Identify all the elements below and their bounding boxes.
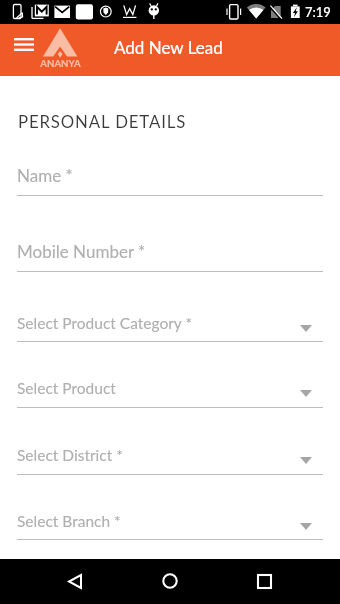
staticText: PERSONAL DETAILS [18, 111, 187, 131]
button[interactable]: Mobile Number * [0, 197, 340, 273]
button[interactable]: Select Product [0, 342, 340, 408]
button[interactable]: Select District * [0, 409, 340, 475]
button[interactable]: Open navigation drawer [4, 27, 44, 61]
staticText: Select Product [17, 379, 116, 398]
button[interactable]: Home [152, 563, 188, 599]
button[interactable]: Select Product Category * [0, 273, 340, 343]
staticText: Add New Lead [114, 37, 223, 57]
staticText: Select District * [17, 446, 123, 465]
staticText: Select Product Category * [17, 314, 193, 333]
staticText: Mobile Number * [17, 241, 146, 261]
staticText: Select Branch * [17, 512, 121, 531]
staticText: ANANYA [40, 58, 81, 70]
button[interactable]: Back [57, 563, 93, 599]
button[interactable]: Name * [0, 136, 340, 197]
staticText: Name * [17, 165, 73, 185]
button[interactable]: Recent apps [246, 563, 282, 599]
button[interactable]: Select Branch * [0, 475, 340, 541]
staticText: 7:19 [305, 4, 331, 20]
